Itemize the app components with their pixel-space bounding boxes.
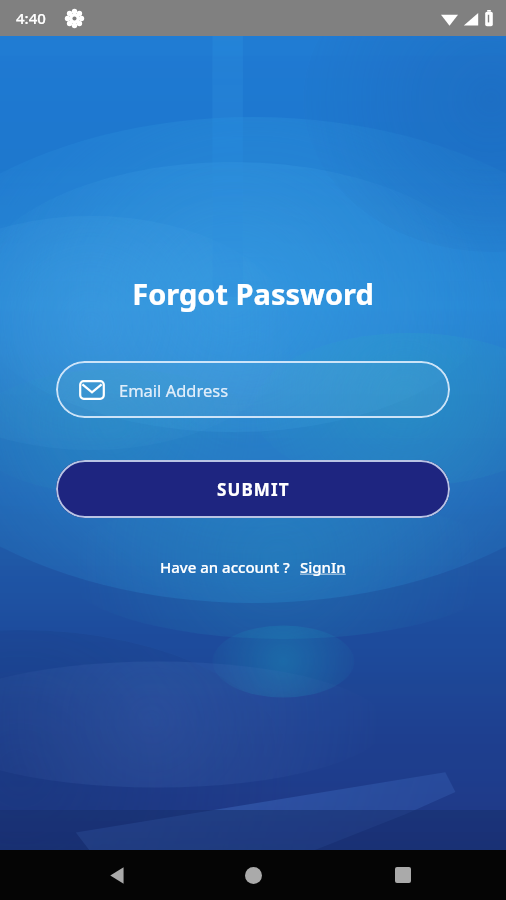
- staticText: Forgot Password: [132, 274, 374, 313]
- staticText: Email Address: [119, 379, 229, 401]
- staticText: SUBMIT: [217, 478, 290, 501]
- button[interactable]: SUBMIT: [56, 460, 450, 518]
- staticText: Have an account ?: [160, 557, 290, 577]
- staticText: 4:40: [16, 8, 46, 28]
- staticText: SignIn: [300, 557, 346, 577]
- button[interactable]: Email Address: [56, 361, 450, 418]
- button[interactable]: Back: [108, 866, 127, 885]
- button[interactable]: Recent apps: [395, 867, 411, 883]
- button[interactable]: Have an account ?: [154, 555, 352, 579]
- other: Settings: [66, 10, 83, 27]
- button[interactable]: Home: [236, 858, 270, 892]
